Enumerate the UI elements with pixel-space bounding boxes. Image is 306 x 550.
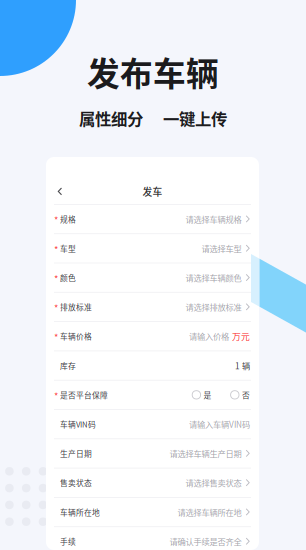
staticText: 1 辆 (235, 360, 250, 372)
staticText: 是否平台保障 (60, 389, 108, 400)
staticText: * (54, 271, 58, 285)
button[interactable]: 生产日期 (46, 439, 259, 468)
staticText: 排放标准 (60, 301, 92, 313)
staticText: 车辆所在地 (60, 506, 100, 518)
staticText: * (54, 301, 58, 314)
staticText: 否 (242, 389, 250, 400)
button[interactable]: * (46, 322, 259, 350)
button[interactable]: 库存 (46, 351, 259, 380)
staticText: * (54, 389, 58, 402)
button[interactable]: * (46, 205, 259, 233)
staticText: * (54, 330, 58, 343)
staticText: 请输入价格 (189, 330, 229, 342)
staticText: 请选择车辆规格 (186, 213, 242, 225)
staticText: 请选择车辆颜色 (186, 272, 242, 284)
button[interactable]: 售卖状态 (46, 468, 259, 497)
staticText: 请输入车辆VIN码 (189, 418, 250, 430)
staticText: 是 (204, 389, 212, 400)
staticText: 车辆VIN码 (60, 419, 96, 430)
staticText: 手续 (60, 536, 76, 547)
staticText: 请选择售卖状态 (186, 477, 242, 489)
staticText: 库存 (60, 360, 76, 371)
button[interactable]: 车辆所在地 (46, 498, 259, 526)
staticText: 生产日期 (60, 448, 92, 459)
staticText: * (54, 242, 58, 256)
staticText: 请选择车型 (202, 242, 242, 254)
staticText: 车型 (60, 243, 76, 254)
button[interactable]: 手续 (46, 527, 259, 550)
staticText: 请确认手续是否齐全 (170, 535, 242, 547)
button[interactable]: * (46, 234, 259, 263)
button[interactable]: 车辆VIN码 (46, 410, 259, 438)
button[interactable]: 返回 (52, 183, 68, 199)
staticText: 车辆价格 (60, 331, 92, 342)
staticText: 万元 (232, 330, 250, 343)
staticText: 规格 (60, 213, 76, 225)
staticText: 发布车辆 (87, 48, 219, 95)
button[interactable]: * (46, 381, 259, 409)
staticText: 请选择车辆生产日期 (170, 447, 242, 459)
staticText: 请选择排放标准 (186, 301, 242, 313)
button[interactable]: * (46, 293, 259, 321)
button[interactable]: * (46, 263, 259, 292)
staticText: 发车 (142, 184, 162, 199)
staticText: 颜色 (60, 272, 76, 283)
staticText: 属性细分 一键上传 (79, 106, 227, 130)
staticText: 请选择车辆所在地 (178, 506, 242, 518)
staticText: * (54, 213, 58, 226)
staticText: 售卖状态 (60, 477, 92, 488)
